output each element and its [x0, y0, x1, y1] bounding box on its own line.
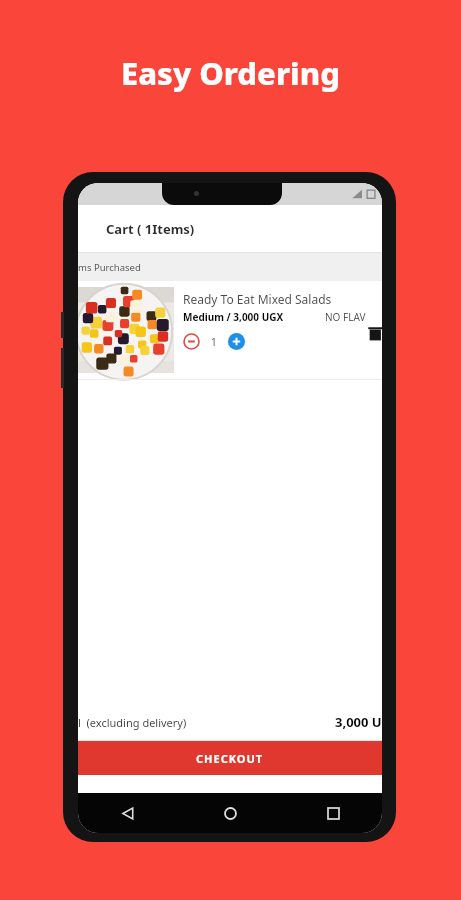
button[interactable]: Decrease quantity	[183, 333, 200, 350]
button[interactable]: Home	[215, 798, 245, 828]
button[interactable]: Increase quantity	[228, 333, 245, 350]
staticText: CHECKOUT	[196, 751, 264, 766]
button[interactable]: Remove item	[368, 326, 382, 342]
staticText: Cart ( 1Items)	[106, 220, 195, 238]
staticText: 3,000 U	[335, 713, 382, 731]
staticText: NO FLAV	[325, 310, 366, 324]
button[interactable]: Ready To Eat Mixed Salads	[78, 281, 382, 379]
staticText: Medium / 3,000 UGX	[183, 310, 284, 324]
button[interactable]: CHECKOUT	[78, 741, 382, 775]
staticText: Ready To Eat Mixed Salads	[183, 291, 332, 307]
button[interactable]: Back	[112, 798, 142, 828]
staticText: Easy Ordering	[121, 52, 340, 94]
staticText: l (excluding delivery)	[78, 715, 187, 730]
staticText: 1	[211, 335, 217, 349]
staticText: ms Purchased	[78, 261, 141, 274]
button[interactable]: Recent apps	[318, 798, 348, 828]
